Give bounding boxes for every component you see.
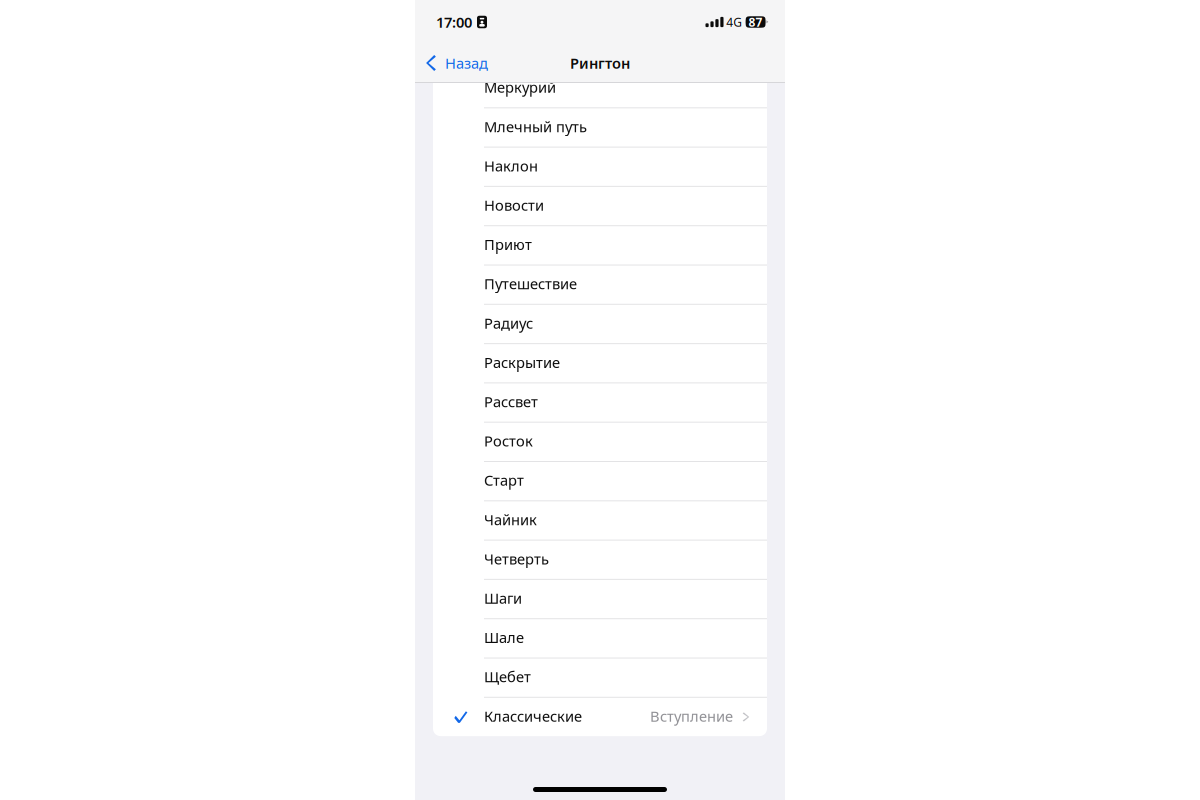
staticText: Старт bbox=[484, 470, 524, 490]
button[interactable]: Назад bbox=[415, 44, 498, 82]
staticText: Классические bbox=[484, 706, 582, 726]
staticText: Росток bbox=[484, 431, 533, 451]
button[interactable]: Приют bbox=[433, 226, 767, 264]
button[interactable]: Млечный путь bbox=[433, 108, 767, 147]
staticText: 17:00 bbox=[436, 12, 472, 32]
staticText: Радиус bbox=[484, 313, 533, 333]
staticText: Шаги bbox=[484, 588, 522, 608]
staticText: Приют bbox=[484, 235, 532, 254]
staticText: Рингтон bbox=[570, 53, 630, 73]
staticText: Чайник bbox=[484, 510, 537, 529]
staticText: 4G bbox=[726, 14, 742, 30]
button[interactable]: Путешествие bbox=[433, 265, 767, 304]
staticText: Рассвет bbox=[484, 392, 538, 411]
button[interactable]: Шале bbox=[433, 619, 767, 657]
staticText: Раскрытие bbox=[484, 352, 560, 372]
staticText: Назад bbox=[445, 53, 488, 73]
staticText: Вступление bbox=[650, 706, 733, 726]
button[interactable]: Меркурий bbox=[433, 69, 767, 107]
staticText: Меркурий bbox=[484, 77, 556, 97]
button[interactable]: Рассвет bbox=[433, 383, 767, 422]
button[interactable]: Старт bbox=[433, 462, 767, 500]
button[interactable]: Радиус bbox=[433, 305, 767, 343]
button[interactable]: Раскрытие bbox=[433, 344, 767, 382]
staticText: Четверть bbox=[484, 549, 549, 568]
button[interactable]: Классические bbox=[433, 698, 767, 736]
button[interactable]: Наклон bbox=[433, 148, 767, 186]
staticText: Путешествие bbox=[484, 274, 577, 293]
button[interactable]: Росток bbox=[433, 423, 767, 461]
staticText: 87 bbox=[749, 14, 763, 30]
button[interactable]: Четверть bbox=[433, 541, 767, 579]
button[interactable]: Щебет bbox=[433, 658, 767, 697]
button[interactable]: Новости bbox=[433, 187, 767, 225]
staticText: Млечный путь bbox=[484, 117, 587, 136]
staticText: Наклон bbox=[484, 156, 538, 175]
staticText: Шале bbox=[484, 628, 524, 647]
button[interactable]: Чайник bbox=[433, 501, 767, 540]
button[interactable]: Шаги bbox=[433, 580, 767, 618]
staticText: Новости bbox=[484, 195, 544, 215]
staticText: Щебет bbox=[484, 667, 531, 686]
